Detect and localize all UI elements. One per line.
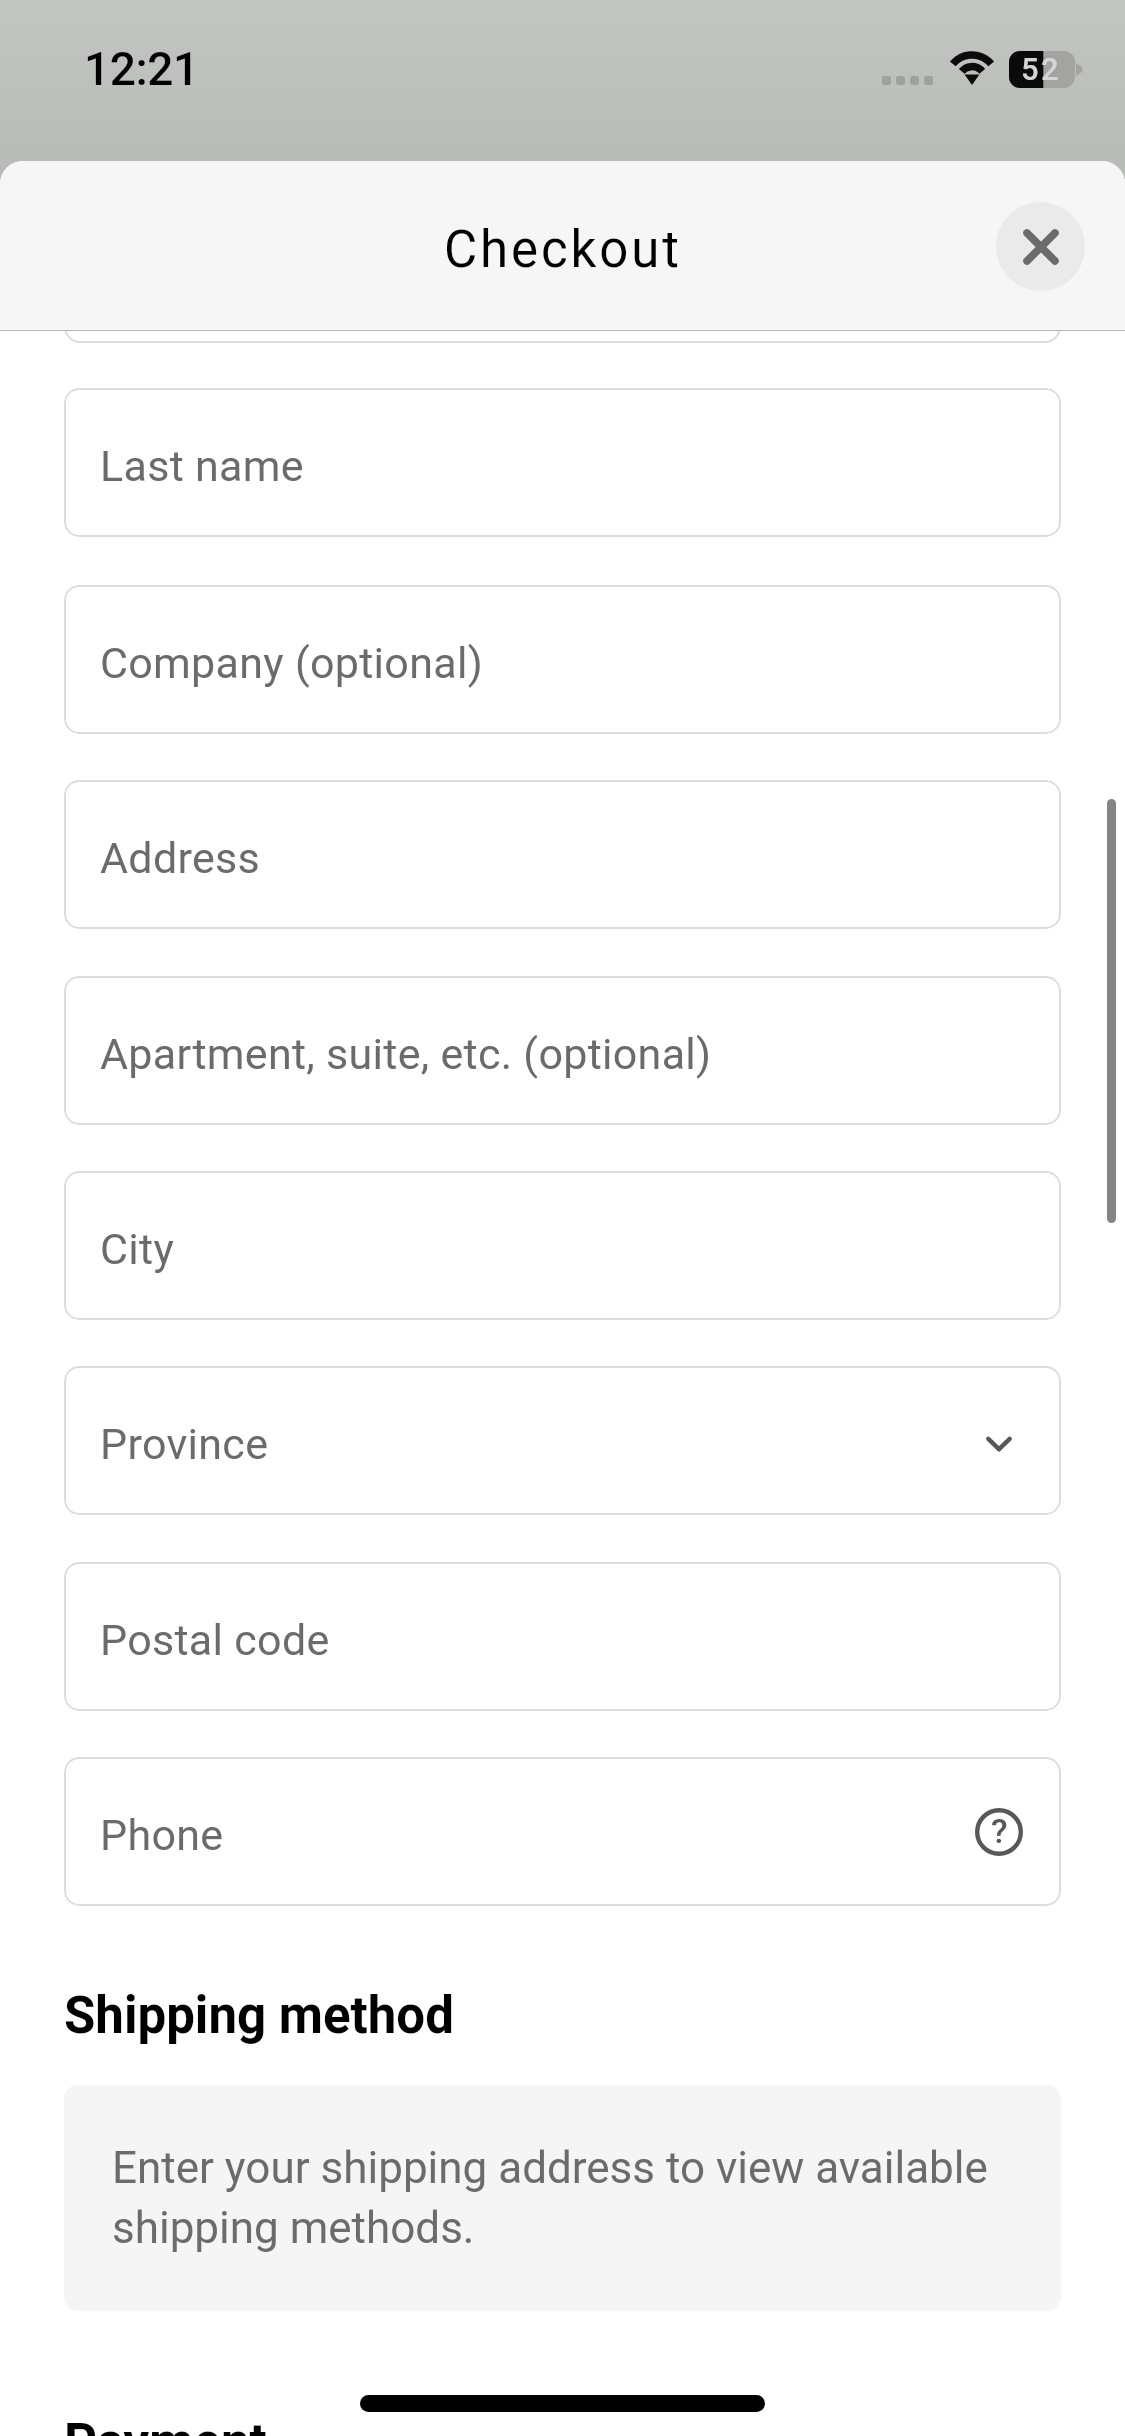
- staticText: City: [100, 1224, 175, 1274]
- staticText: Payment: [64, 2413, 267, 2436]
- staticText: Apartment, suite, etc. (optional): [100, 1029, 712, 1079]
- button[interactable]: Province: [64, 1366, 1061, 1515]
- button[interactable]: Why do we need your phone number?: [974, 1807, 1024, 1857]
- staticText: 12:21: [84, 42, 199, 96]
- staticText: Checkout: [444, 220, 682, 280]
- staticText: Company (optional): [100, 638, 483, 688]
- staticText: 52: [1021, 51, 1062, 87]
- button[interactable]: Apartment, suite, etc. (optional): [64, 976, 1061, 1125]
- button[interactable]: Address: [64, 780, 1061, 929]
- button[interactable]: Last name: [64, 388, 1061, 537]
- button[interactable]: Postal code: [64, 1562, 1061, 1711]
- button[interactable]: Phone: [64, 1757, 1061, 1906]
- other: Select province: [973, 1415, 1025, 1467]
- staticText: Last name: [100, 441, 304, 491]
- staticText: Enter your shipping address to view avai…: [112, 2142, 1031, 2253]
- button[interactable]: City: [64, 1171, 1061, 1320]
- staticText: Province: [100, 1419, 269, 1469]
- staticText: Postal code: [100, 1615, 330, 1665]
- button[interactable]: Company (optional): [64, 585, 1061, 734]
- staticText: ?: [991, 1811, 1008, 1851]
- staticText: Phone: [100, 1810, 224, 1860]
- staticText: Shipping method: [64, 1986, 454, 2046]
- button[interactable]: Close: [996, 202, 1085, 291]
- staticText: Address: [100, 833, 261, 883]
